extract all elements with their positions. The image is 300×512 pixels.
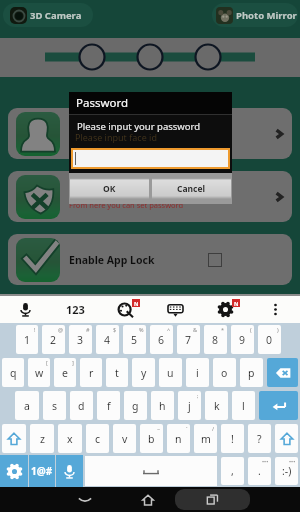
staticText: z	[40, 432, 45, 446]
staticText: •••	[289, 458, 296, 465]
button[interactable]: d	[70, 391, 93, 420]
button[interactable]: OK	[70, 178, 149, 199]
button[interactable]: l	[232, 391, 255, 420]
staticText: x	[67, 432, 73, 446]
button[interactable]: 9	[231, 325, 254, 354]
staticText: c	[95, 432, 101, 446]
button[interactable]: u	[159, 358, 182, 387]
button[interactable]: 3	[69, 325, 92, 354]
button[interactable]: Backspace	[267, 358, 298, 387]
staticText: Trust Apps	[69, 121, 125, 135]
button[interactable]: 2	[42, 325, 65, 354]
button[interactable]: Voice input	[0, 296, 50, 323]
button[interactable]: 3D Camera	[3, 3, 93, 27]
button[interactable]: Settings	[200, 296, 250, 323]
button[interactable]: a	[15, 391, 39, 420]
button[interactable]: q	[2, 358, 24, 387]
button[interactable]: .	[248, 457, 271, 485]
staticText: ]	[72, 359, 74, 366]
staticText: k	[214, 399, 220, 413]
staticText: #	[86, 326, 90, 333]
button[interactable]	[85, 456, 217, 486]
staticText: m	[201, 432, 211, 446]
button[interactable]: c	[86, 424, 109, 453]
button[interactable]: ,	[221, 457, 244, 485]
button[interactable]: 123	[50, 296, 100, 323]
button[interactable]: z	[30, 424, 54, 453]
button[interactable]: Voice input	[56, 455, 83, 487]
staticText: d	[78, 399, 85, 413]
button[interactable]: 5	[123, 325, 146, 354]
staticText: 9	[239, 333, 246, 347]
button[interactable]: Photo Mirror	[212, 3, 298, 27]
staticText: l	[242, 399, 245, 413]
button[interactable]: k	[205, 391, 228, 420]
staticText: 0	[266, 333, 273, 347]
button[interactable]: w	[28, 358, 50, 387]
button[interactable]: 8	[204, 325, 227, 354]
staticText: 1	[24, 333, 31, 347]
staticText: n	[175, 432, 182, 446]
button[interactable]: j	[178, 391, 201, 420]
button[interactable]: Home	[127, 487, 169, 512]
button[interactable]: 1@#	[29, 455, 55, 487]
button[interactable]: m	[194, 424, 217, 453]
button[interactable]: Enter	[259, 391, 298, 420]
button[interactable]: Back	[64, 487, 106, 512]
button[interactable]: 0	[258, 325, 281, 354]
staticText: OK	[103, 183, 116, 195]
button[interactable]: v	[113, 424, 136, 453]
staticText: 8	[212, 333, 219, 347]
staticText: .	[258, 464, 261, 478]
button[interactable]: Symbols settings	[0, 455, 28, 487]
button[interactable]: t	[106, 358, 128, 387]
button[interactable]: !	[221, 424, 244, 453]
staticText: [	[46, 359, 48, 366]
button[interactable]: n	[167, 424, 190, 453]
staticText: 3	[77, 333, 84, 347]
staticText: •••	[262, 458, 269, 465]
button[interactable]: o	[213, 358, 236, 387]
button[interactable]: :-)	[275, 457, 298, 485]
staticText: f	[107, 399, 111, 413]
button[interactable]: Enable App Lock	[8, 234, 292, 285]
button[interactable]: Trust Apps	[8, 108, 292, 159]
button[interactable]: y	[132, 358, 155, 387]
button[interactable]: Keyboard layout	[150, 296, 200, 323]
button[interactable]: p	[240, 358, 263, 387]
button[interactable]: Recent apps	[175, 489, 250, 510]
staticText: ~	[157, 425, 161, 432]
button[interactable]: b	[140, 424, 163, 453]
staticText: Enable App Lock	[69, 253, 155, 267]
staticText: From here you can set password	[69, 200, 184, 210]
button[interactable]: More options	[250, 296, 300, 323]
staticText: u	[167, 366, 174, 380]
button[interactable]: i	[186, 358, 209, 387]
button[interactable]: r	[80, 358, 102, 387]
button[interactable]: Stickers	[100, 296, 150, 323]
button[interactable]: ?	[248, 424, 271, 453]
button[interactable]: h	[151, 391, 174, 420]
button[interactable]: Shift	[2, 424, 26, 453]
staticText: 4	[104, 333, 111, 347]
staticText: 1@#	[31, 464, 53, 478]
staticText: o	[221, 366, 228, 380]
button[interactable]: f	[97, 391, 120, 420]
button[interactable]: Shift	[275, 424, 298, 453]
button[interactable]: s	[43, 391, 66, 420]
button[interactable]: 6	[150, 325, 173, 354]
staticText: 6	[158, 333, 165, 347]
button[interactable]: Set Password	[8, 171, 292, 222]
button[interactable]: e	[54, 358, 76, 387]
button[interactable]: Cancel	[152, 178, 231, 199]
button[interactable]: g	[124, 391, 147, 420]
button[interactable]: 4	[96, 325, 119, 354]
staticText: %	[139, 326, 144, 333]
staticText: !	[231, 432, 234, 446]
staticText: r	[89, 366, 94, 380]
staticText: y	[141, 366, 147, 380]
button[interactable]: 1	[16, 325, 38, 354]
staticText: v	[122, 432, 128, 446]
button[interactable]: x	[58, 424, 82, 453]
button[interactable]: 7	[177, 325, 200, 354]
